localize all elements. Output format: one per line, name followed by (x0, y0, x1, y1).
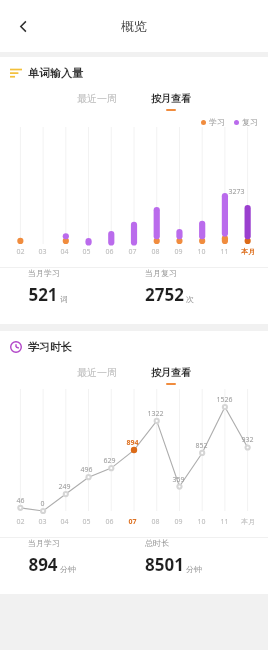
staticText: 02 (16, 517, 25, 527)
staticText: 10 (197, 247, 206, 257)
staticText: 852 (195, 441, 208, 451)
staticText: 05 (82, 247, 91, 257)
staticText: 359 (172, 475, 185, 485)
staticText: 03 (38, 247, 47, 257)
staticText: 06 (105, 247, 114, 257)
staticText: 46 (16, 496, 25, 506)
staticText: 次 (186, 294, 194, 304)
staticText: 10 (197, 517, 206, 527)
button[interactable]: Back (6, 9, 40, 43)
button[interactable]: 当月学习 (28, 538, 145, 576)
staticText: 总时长 (145, 538, 169, 548)
staticText: 06 (105, 517, 114, 527)
staticText: 词 (60, 294, 68, 304)
staticText: 学习 (209, 117, 225, 127)
staticText: 概览 (121, 18, 147, 34)
staticText: 629 (103, 456, 116, 466)
staticText: 08 (151, 517, 160, 527)
staticText: 09 (174, 247, 183, 257)
staticText: 按月查看 (151, 92, 191, 105)
staticText: 04 (60, 247, 69, 257)
staticText: 03 (38, 517, 47, 527)
staticText: 11 (220, 247, 229, 257)
staticText: 当月复习 (145, 268, 177, 278)
button[interactable]: 按月查看 (143, 89, 199, 111)
staticText: 当月学习 (28, 268, 60, 278)
staticText: 按月查看 (151, 366, 191, 379)
button[interactable]: 当月学习 (28, 268, 145, 306)
staticText: 本月 (241, 247, 255, 256)
staticText: 02 (16, 247, 25, 257)
staticText: 1526 (216, 395, 233, 405)
staticText: 04 (60, 517, 69, 527)
staticText: 学习时长 (28, 340, 72, 354)
staticText: 894 (28, 553, 58, 576)
button[interactable]: 当月复习 (145, 268, 268, 306)
staticText: 3273 (228, 187, 245, 197)
staticText: 09 (174, 517, 183, 527)
staticText: 08 (151, 247, 160, 257)
staticText: 496 (80, 465, 93, 475)
staticText: 最近一周 (77, 92, 117, 105)
staticText: 分钟 (186, 564, 202, 574)
staticText: 0 (40, 499, 45, 509)
staticText: 07 (128, 247, 137, 257)
staticText: 最近一周 (77, 366, 117, 379)
staticText: 分钟 (60, 564, 76, 574)
staticText: 05 (82, 517, 91, 527)
staticText: 932 (241, 435, 254, 445)
button[interactable]: 总时长 (145, 538, 268, 576)
staticText: 1322 (147, 409, 164, 419)
staticText: 2752 (145, 283, 184, 306)
staticText: 单词输入量 (28, 66, 83, 80)
staticText: 本月 (241, 517, 255, 526)
staticText: 521 (28, 283, 58, 306)
button[interactable]: 按月查看 (143, 363, 199, 385)
button[interactable]: 最近一周 (69, 363, 125, 382)
staticText: 249 (58, 482, 71, 492)
staticText: 当月学习 (28, 538, 60, 548)
staticText: 8501 (145, 553, 184, 576)
staticText: 复习 (242, 117, 258, 127)
button[interactable]: 最近一周 (69, 89, 125, 108)
staticText: 894 (126, 438, 139, 448)
staticText: 11 (220, 517, 229, 527)
staticText: 07 (128, 517, 137, 527)
